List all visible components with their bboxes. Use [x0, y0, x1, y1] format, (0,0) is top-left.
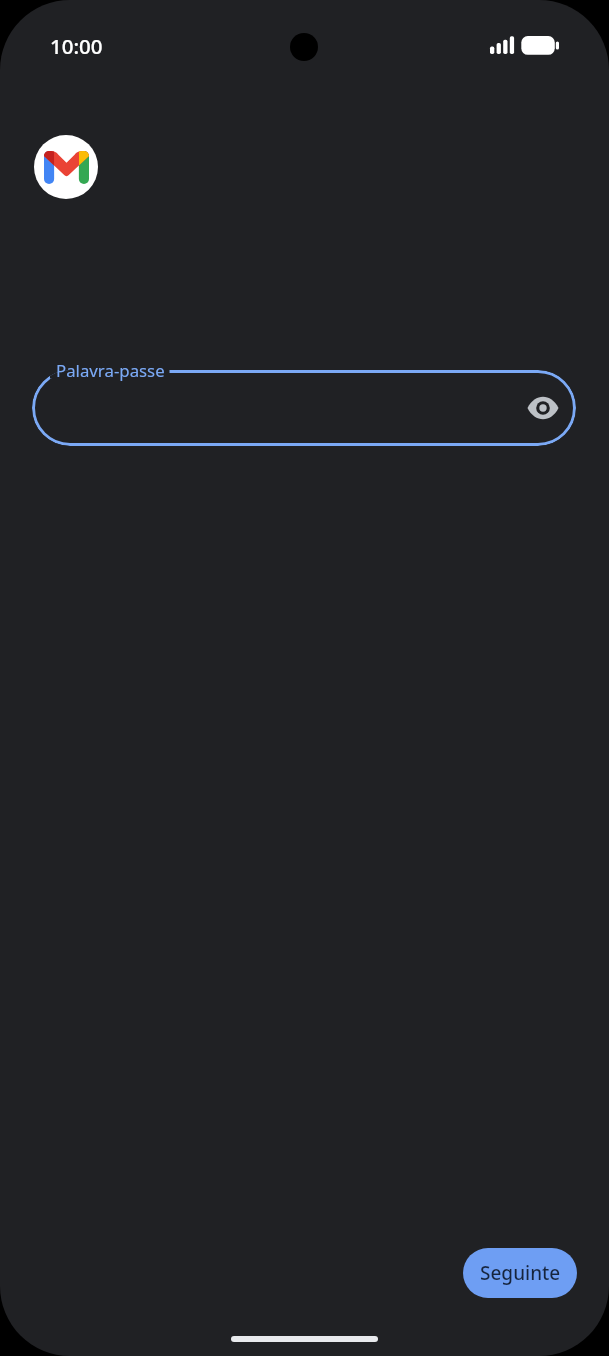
staticText: 10:00 — [50, 32, 103, 60]
staticText: Palavra-passe — [56, 359, 165, 382]
button[interactable]: Gmail — [34, 135, 98, 199]
staticText: Seguinte — [480, 1260, 561, 1286]
button[interactable]: Palavra-passe — [32, 370, 576, 446]
button[interactable]: Seguinte — [463, 1248, 577, 1298]
button[interactable]: Mostrar palavra-passe — [517, 382, 569, 434]
